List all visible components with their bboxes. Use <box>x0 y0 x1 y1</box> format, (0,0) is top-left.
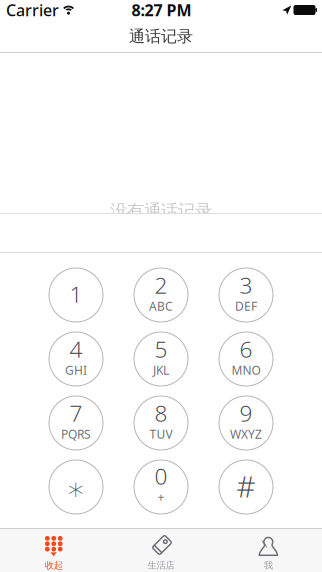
staticText: # <box>236 466 255 505</box>
staticText: 8 <box>154 398 167 428</box>
staticText: 3 <box>239 270 252 300</box>
staticText: 没有通话记录 <box>110 200 212 222</box>
button[interactable]: 1 <box>49 268 103 322</box>
button[interactable]: 9 <box>219 396 273 450</box>
staticText: 通话记录 <box>129 27 193 46</box>
button[interactable]: 4 <box>49 332 103 386</box>
staticText: 收起 <box>45 560 63 571</box>
staticText: 5 <box>154 334 167 364</box>
staticText: PQRS <box>61 426 91 442</box>
staticText: Carrier <box>6 0 59 21</box>
staticText: 8:27 PM <box>131 0 191 21</box>
staticText: 生活店 <box>147 560 174 571</box>
staticText: DEF <box>235 298 257 314</box>
staticText: JKL <box>153 362 169 378</box>
staticText: TUV <box>149 426 172 442</box>
staticText: 1 <box>69 279 82 309</box>
staticText: 0 <box>154 461 167 491</box>
button[interactable]: 5 <box>134 332 188 386</box>
staticText: ∗ <box>66 471 86 507</box>
button[interactable]: 我 <box>215 528 322 572</box>
staticText: 我 <box>264 560 273 571</box>
button[interactable]: 6 <box>219 332 273 386</box>
staticText: + <box>157 489 164 505</box>
staticText: 4 <box>69 334 82 364</box>
button[interactable]: 7 <box>49 396 103 450</box>
staticText: 9 <box>239 398 252 428</box>
button[interactable]: # <box>219 460 273 514</box>
button[interactable]: 8 <box>134 396 188 450</box>
button[interactable]: ∗ <box>49 460 103 514</box>
staticText: MNO <box>231 362 260 378</box>
button[interactable]: 收起 <box>0 528 107 572</box>
staticText: 2 <box>154 270 167 300</box>
button[interactable]: 3 <box>219 268 273 322</box>
button[interactable]: 生活店 <box>107 528 215 572</box>
button[interactable]: 2 <box>134 268 188 322</box>
staticText: WXYZ <box>230 426 262 442</box>
staticText: ABC <box>149 298 173 314</box>
staticText: 7 <box>69 398 82 428</box>
button[interactable]: 0 <box>134 460 188 514</box>
staticText: GHI <box>65 362 87 378</box>
staticText: 6 <box>239 334 252 364</box>
